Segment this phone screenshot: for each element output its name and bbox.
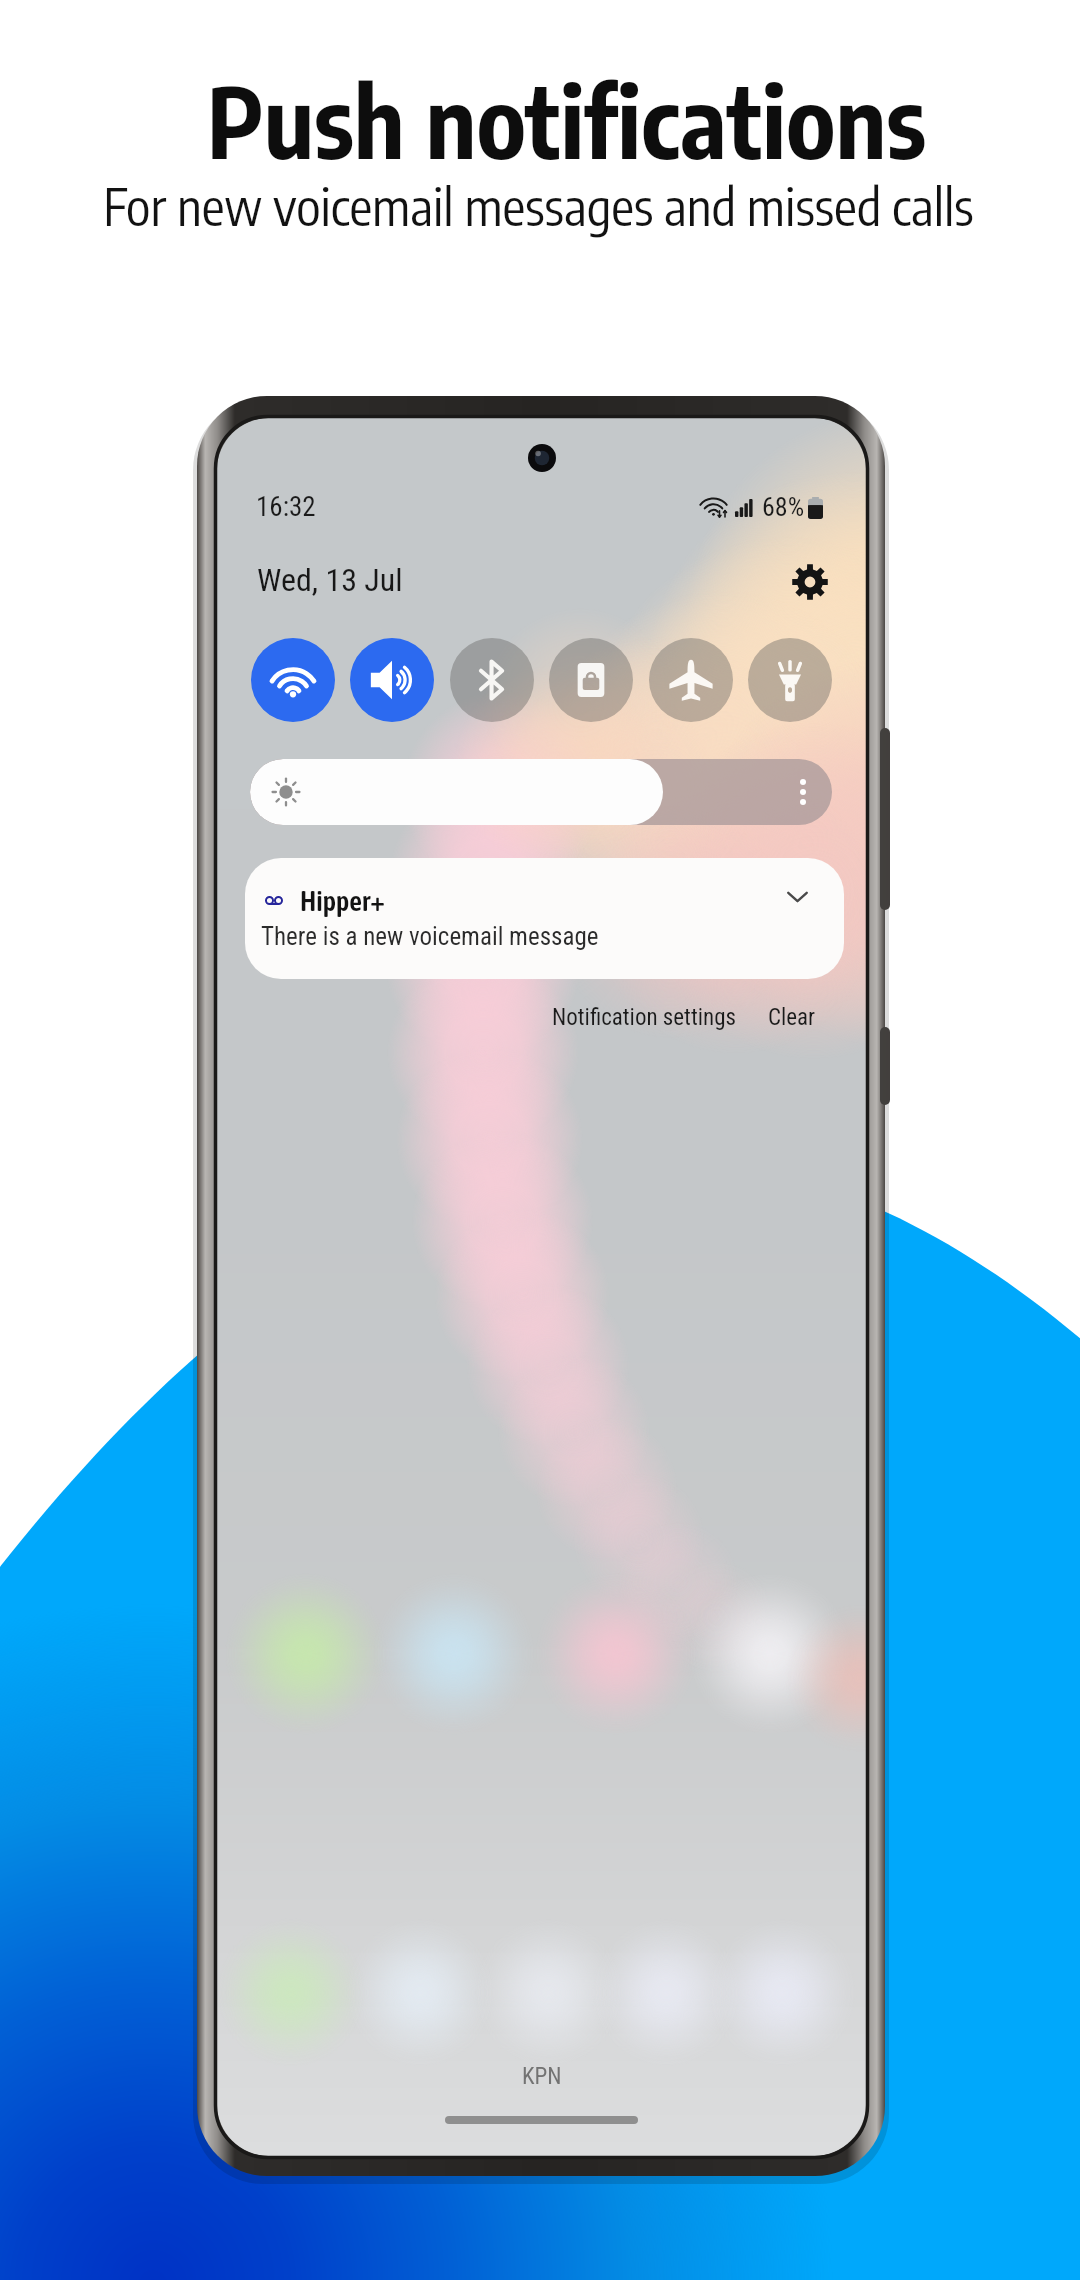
button[interactable]: Notification settings — [548, 996, 740, 1039]
staticText: 16:32 — [256, 491, 316, 523]
button[interactable]: Flight mode — [649, 638, 733, 722]
staticText: For new voicemail messages and missed ca… — [103, 173, 974, 237]
button[interactable]: Flashlight — [748, 638, 832, 722]
staticText: Push notifications — [207, 59, 926, 180]
button[interactable]: Wi-Fi — [251, 638, 335, 722]
button[interactable]: Bluetooth — [450, 638, 534, 722]
button[interactable]: Hipper+ — [245, 858, 844, 979]
button[interactable] — [250, 759, 832, 825]
staticText: Notification settings — [552, 1004, 736, 1031]
staticText: KPN — [522, 2063, 562, 2090]
button[interactable]: Expand notification — [777, 877, 817, 917]
staticText: Hipper+ — [300, 885, 385, 917]
staticText: There is a new voicemail message — [261, 922, 599, 951]
button[interactable]: Quick settings — [784, 556, 836, 608]
button[interactable]: Screen lock — [549, 638, 633, 722]
button[interactable]: Sound — [350, 638, 434, 722]
button[interactable]: Clear — [764, 996, 820, 1039]
staticText: 68% — [762, 492, 805, 522]
staticText: Wed, 13 Jul — [257, 561, 403, 599]
staticText: Clear — [768, 1004, 816, 1031]
